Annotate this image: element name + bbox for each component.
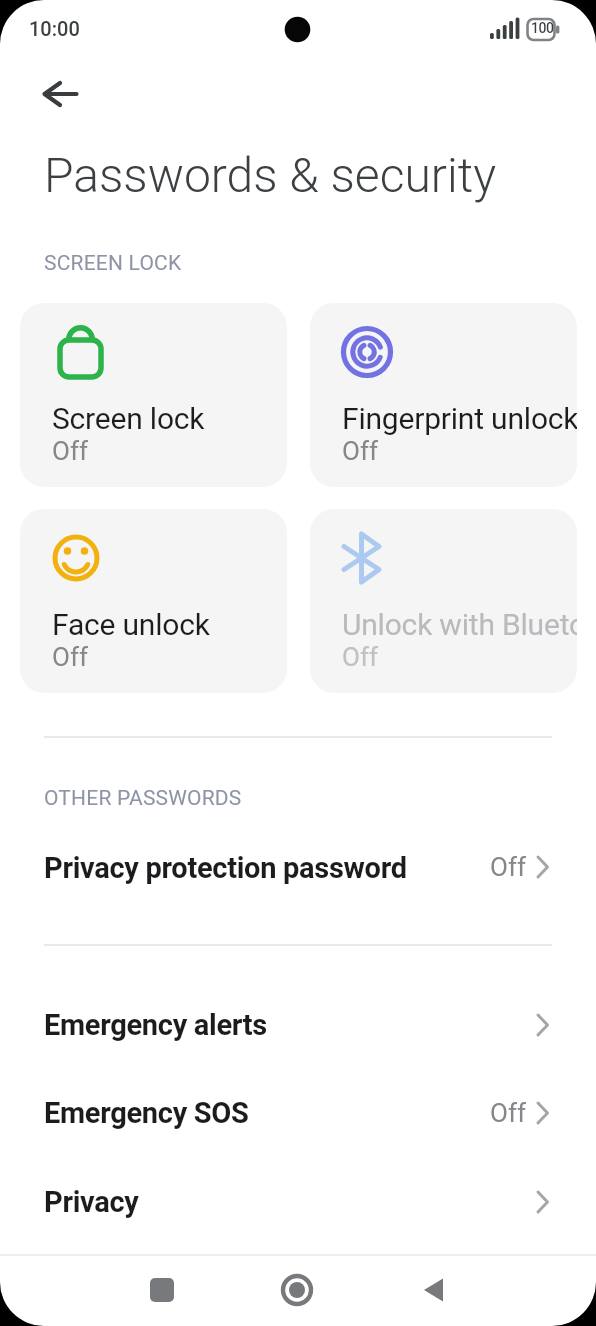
staticText: Off <box>52 436 88 466</box>
staticText: SCREEN LOCK <box>44 251 182 276</box>
staticText: Privacy <box>44 1185 139 1219</box>
staticText: Passwords & security <box>44 147 496 203</box>
staticText: Off <box>490 852 526 882</box>
staticText: Screen lock <box>52 401 287 436</box>
staticText: Face unlock <box>52 607 287 642</box>
staticText: Emergency alerts <box>44 1008 267 1042</box>
staticText: 100 <box>531 20 554 36</box>
staticText: Off <box>342 436 378 466</box>
staticText: Off <box>490 1098 526 1128</box>
staticText: Emergency SOS <box>44 1096 249 1130</box>
staticText: 10:00 <box>29 17 80 40</box>
staticText: Unlock with Bluetooth device <box>342 607 577 642</box>
staticText: Off <box>52 642 88 672</box>
staticText: Fingerprint unlock <box>342 401 577 436</box>
staticText: Off <box>342 642 378 672</box>
staticText: Privacy protection password <box>44 851 407 885</box>
staticText: OTHER PASSWORDS <box>44 786 242 811</box>
